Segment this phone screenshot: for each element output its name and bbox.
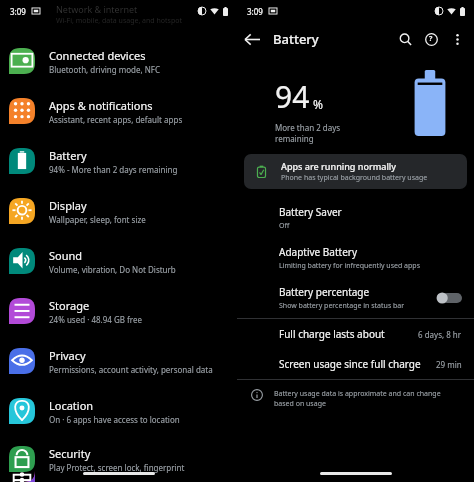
staticText: based on usage	[274, 399, 326, 409]
staticText: Privacy	[49, 348, 86, 363]
staticText: Assistant, recent apps, default apps	[49, 114, 183, 125]
button[interactable]: Full charge lasts about	[237, 319, 474, 349]
button[interactable]: Back	[237, 24, 267, 54]
staticText: Bluetooth, driving mode, NFC	[49, 64, 160, 75]
staticText: remaining	[275, 133, 314, 144]
staticText: ?	[429, 34, 433, 44]
button[interactable]: Sound	[0, 236, 237, 286]
button[interactable]: Privacy	[0, 336, 237, 386]
staticText: Wallpaper, sleep, font size	[49, 214, 146, 225]
button[interactable]: Security	[0, 436, 237, 482]
staticText: 3:09	[10, 6, 26, 17]
staticText: Adaptive Battery	[279, 245, 358, 259]
staticText: 6 days, 8 hr	[418, 329, 462, 340]
button[interactable]: Battery percentage	[237, 278, 474, 318]
staticText: Play Protect, screen lock, fingerprint	[49, 462, 185, 473]
button[interactable]: Storage	[0, 286, 237, 336]
staticText: Off	[279, 221, 290, 231]
staticText: Security	[49, 446, 91, 461]
staticText: 3:09	[247, 6, 263, 17]
staticText: Battery	[49, 148, 87, 163]
staticText: Battery percentage	[279, 285, 370, 299]
button[interactable]: More options	[444, 26, 470, 52]
button[interactable]: Apps & notifications	[0, 86, 237, 136]
button[interactable]: Adaptive Battery	[237, 238, 474, 278]
staticText: Network & internet	[56, 3, 138, 15]
staticText: Phone has typical background battery usa…	[281, 173, 428, 183]
button[interactable]: Screen usage since full charge	[237, 349, 474, 379]
staticText: 24% used · 48.94 GB free	[49, 314, 142, 325]
staticText: 94	[275, 76, 310, 117]
staticText: Connected devices	[49, 48, 146, 63]
staticText: Storage	[49, 298, 90, 313]
staticText: Volume, vibration, Do Not Disturb	[49, 264, 176, 275]
button[interactable]: Battery	[0, 136, 237, 186]
staticText: Permissions, account activity, personal …	[49, 364, 213, 375]
staticText: %	[313, 96, 323, 112]
staticText: Battery	[273, 30, 319, 48]
button[interactable]: Help	[418, 26, 444, 52]
button[interactable]: Display	[0, 186, 237, 236]
button[interactable]: Location	[0, 386, 237, 436]
staticText: Display	[49, 198, 87, 213]
button[interactable]: Apps are running normally	[244, 154, 467, 189]
button[interactable]: Search	[392, 26, 418, 52]
staticText: Location	[49, 398, 94, 413]
staticText: On · 6 apps have access to location	[49, 414, 180, 425]
staticText: Sound	[49, 248, 83, 263]
staticText: 94% - More than 2 days remaining	[49, 164, 178, 175]
button[interactable]: Connected devices	[0, 36, 237, 86]
staticText: Wi-Fi, mobile, data usage, and hotspot	[56, 16, 182, 25]
staticText: Limiting battery for infrequently used a…	[279, 261, 420, 271]
staticText: Battery Saver	[279, 205, 342, 219]
staticText: Apps are running normally	[281, 160, 397, 172]
button[interactable]: Battery Saver	[237, 198, 474, 238]
staticText: 29 min	[436, 359, 462, 370]
staticText: Full charge lasts about	[279, 327, 385, 341]
staticText: Show battery percentage in status bar	[279, 301, 405, 311]
staticText: More than 2 days	[275, 122, 341, 133]
staticText: Apps & notifications	[49, 98, 153, 113]
staticText: Battery usage data is approximate and ca…	[274, 389, 441, 399]
staticText: Screen usage since full charge	[279, 357, 421, 371]
